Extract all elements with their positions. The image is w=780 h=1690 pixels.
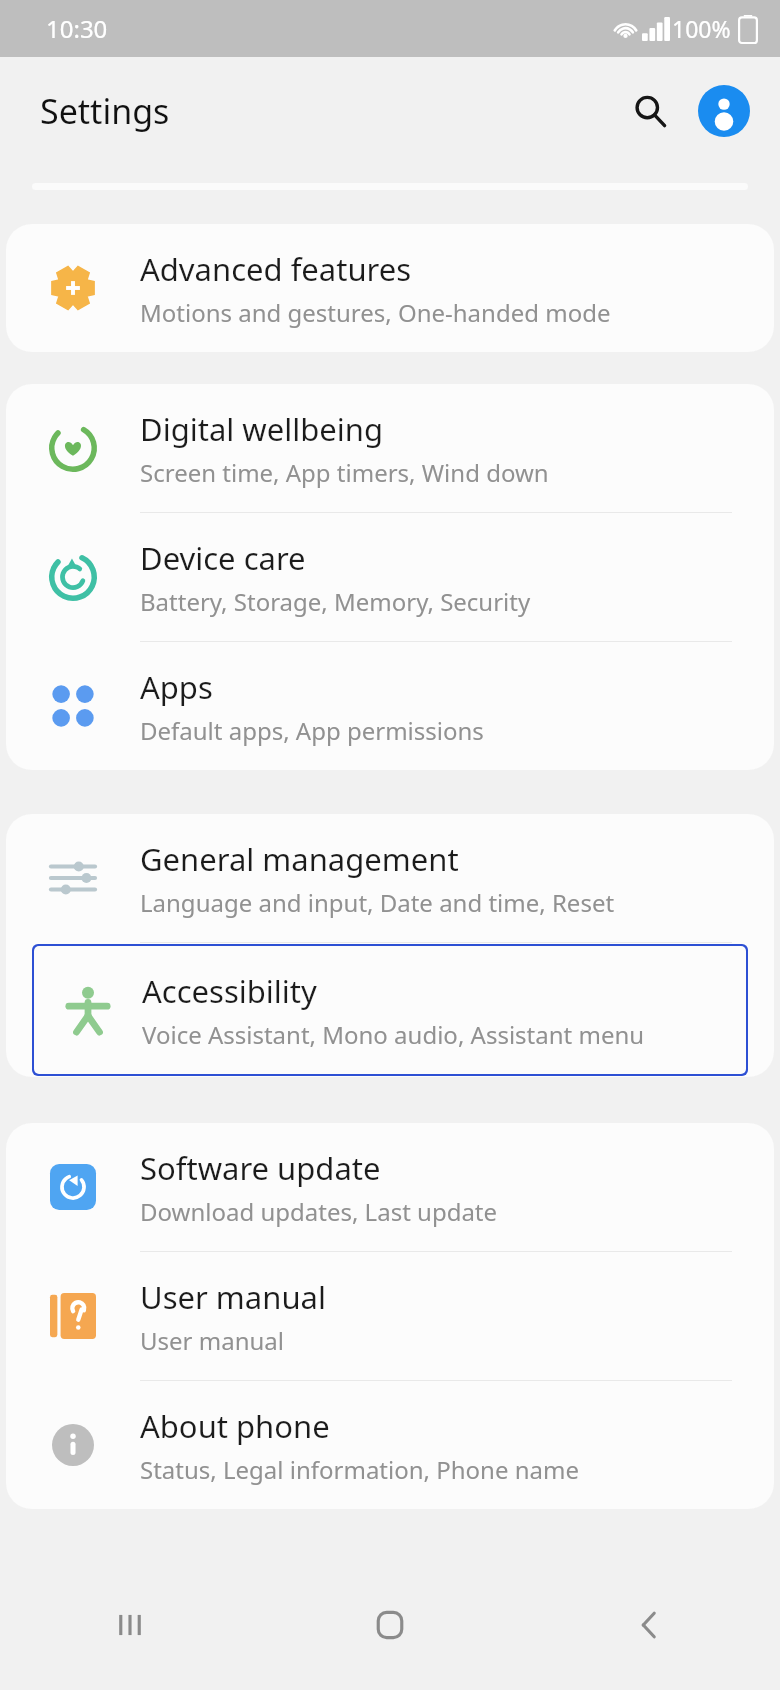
- button[interactable]: Software update: [6, 1123, 774, 1251]
- staticText: Software update: [140, 1147, 381, 1189]
- button[interactable]: Apps: [6, 642, 774, 770]
- staticText: About phone: [140, 1405, 330, 1447]
- button[interactable]: About phone: [6, 1381, 774, 1509]
- button[interactable]: Digital wellbeing: [6, 384, 774, 512]
- staticText: Apps: [140, 666, 213, 708]
- button[interactable]: Home: [260, 1560, 520, 1690]
- staticText: Language and input, Date and time, Reset: [140, 886, 615, 919]
- staticText: Motions and gestures, One-handed mode: [140, 296, 611, 329]
- staticText: Settings: [40, 88, 170, 134]
- button[interactable]: Advanced features: [6, 224, 774, 352]
- button[interactable]: User manual: [6, 1252, 774, 1380]
- staticText: Advanced features: [140, 248, 412, 290]
- staticText: 10:30: [46, 12, 108, 45]
- staticText: Accessibility: [142, 970, 317, 1012]
- button[interactable]: Back: [520, 1560, 780, 1690]
- button[interactable]: Account: [698, 85, 750, 137]
- button[interactable]: General management: [6, 814, 774, 942]
- staticText: Screen time, App timers, Wind down: [140, 456, 549, 489]
- button[interactable]: Accessibility: [34, 946, 746, 1074]
- staticText: Default apps, App permissions: [140, 714, 484, 747]
- button[interactable]: Recents: [0, 1560, 260, 1690]
- button[interactable]: Device care: [6, 513, 774, 641]
- staticText: User manual: [140, 1276, 326, 1318]
- staticText: Status, Legal information, Phone name: [140, 1453, 579, 1486]
- button[interactable]: Search: [618, 79, 682, 143]
- staticText: User manual: [140, 1324, 284, 1357]
- staticText: Download updates, Last update: [140, 1195, 498, 1228]
- staticText: Digital wellbeing: [140, 408, 383, 450]
- staticText: Voice Assistant, Mono audio, Assistant m…: [142, 1018, 645, 1051]
- staticText: Battery, Storage, Memory, Security: [140, 585, 531, 618]
- staticText: 100%: [672, 13, 731, 44]
- staticText: General management: [140, 838, 459, 880]
- staticText: Device care: [140, 537, 306, 579]
